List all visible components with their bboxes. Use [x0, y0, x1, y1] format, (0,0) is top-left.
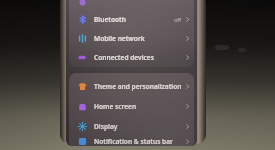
button[interactable]: Notification & status bar	[69, 136, 194, 146]
button[interactable]	[69, 0, 194, 10]
button[interactable]: Mobile network	[69, 29, 194, 48]
staticText: off	[174, 16, 181, 23]
staticText: Mobile network	[94, 34, 145, 43]
button[interactable]: Home screen	[69, 96, 194, 116]
staticText: Display	[94, 122, 118, 131]
staticText: Home screen	[94, 102, 137, 111]
staticText: Bluetooth	[94, 15, 126, 24]
button[interactable]: Display	[69, 116, 194, 136]
button[interactable]: Theme and personalization	[69, 76, 194, 96]
other: Mobile network	[184, 34, 192, 43]
other: Theme and personalization	[184, 82, 192, 91]
staticText: Connected devices	[94, 53, 154, 62]
other: Connected devices	[184, 53, 192, 62]
other: Home screen	[184, 102, 192, 111]
button[interactable]: Bluetooth	[69, 10, 194, 29]
staticText: Notification & status bar	[94, 137, 173, 146]
staticText: Theme and personalization	[94, 82, 182, 91]
button[interactable]: Connected devices	[69, 48, 194, 67]
other: Display	[184, 122, 192, 131]
other: Notification & status bar	[184, 137, 192, 146]
other: Bluetooth	[184, 15, 192, 24]
